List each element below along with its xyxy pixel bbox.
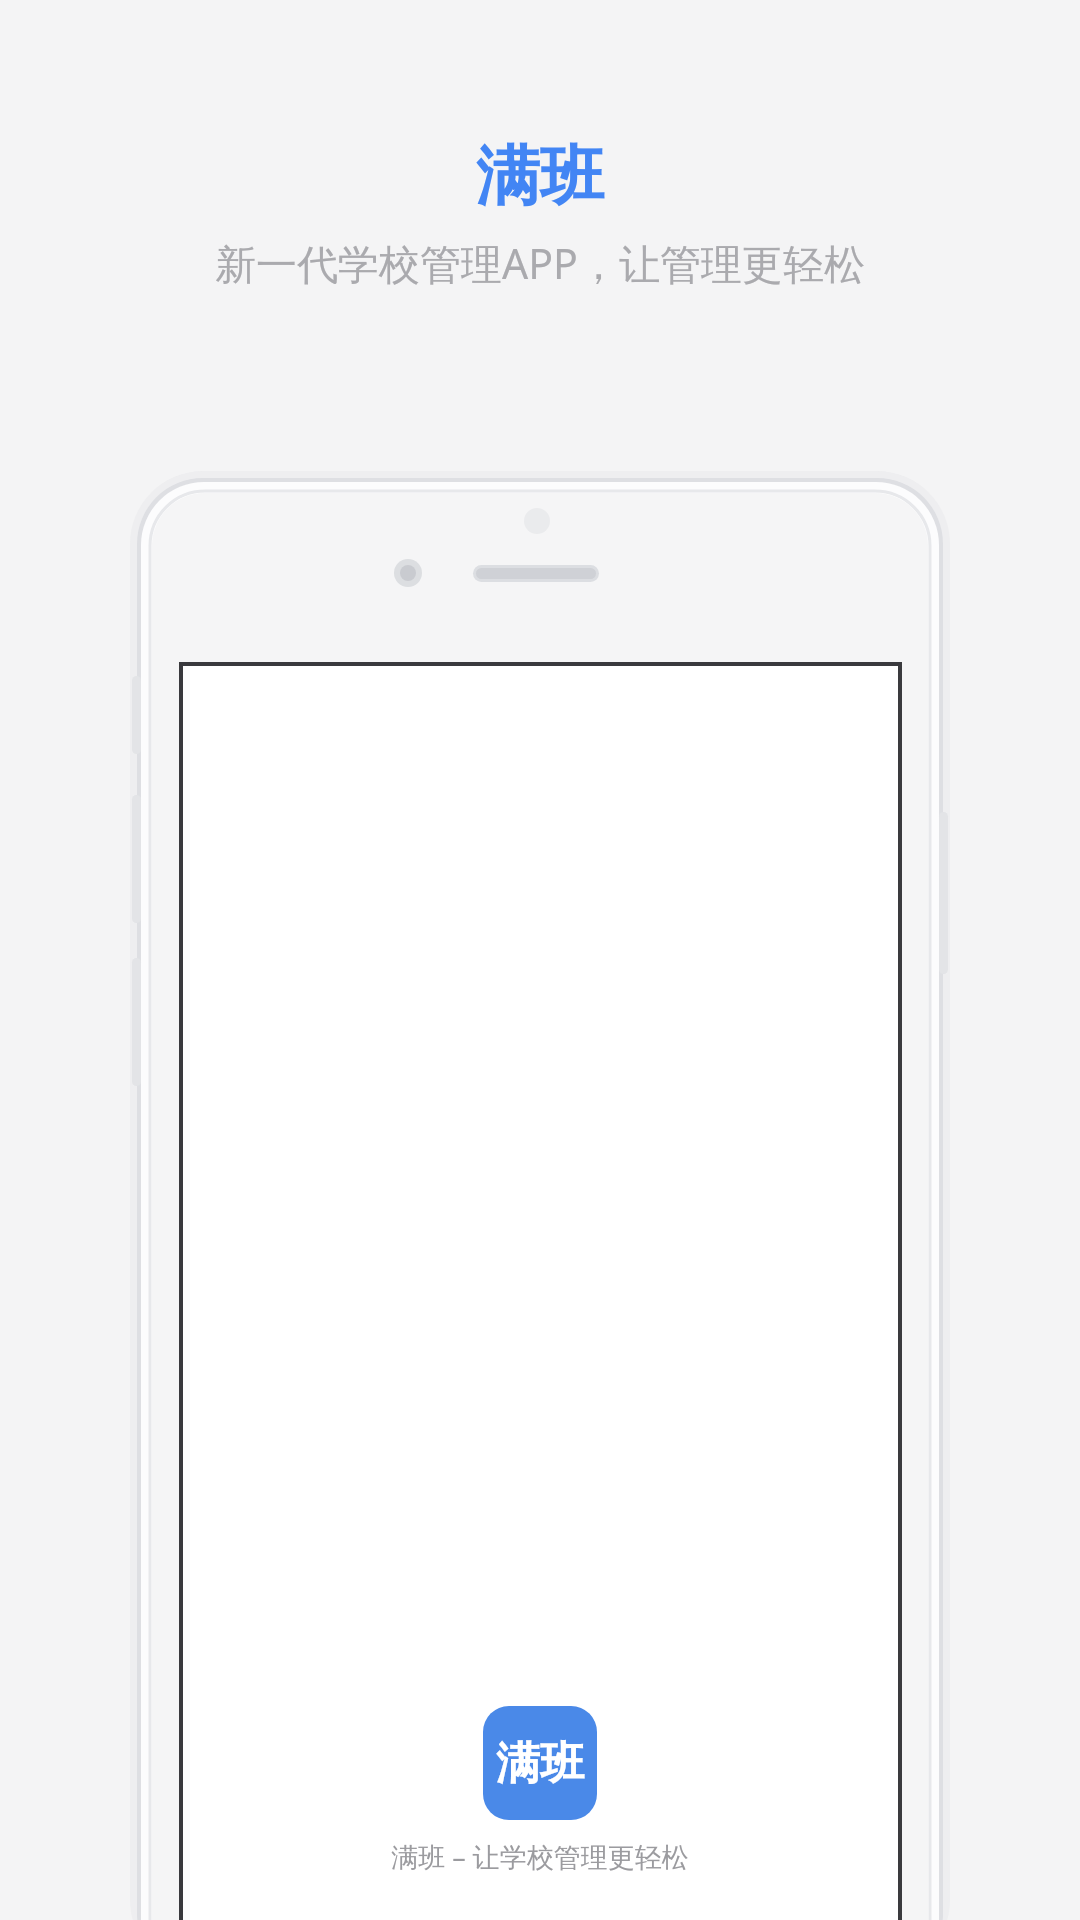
- staticText: 满班: [496, 1736, 584, 1791]
- staticText: 满班 – 让学校管理更轻松: [391, 1838, 689, 1875]
- button[interactable]: 满班 app icon: [483, 1706, 597, 1820]
- button[interactable]: 满班: [476, 136, 604, 217]
- staticText: 新一代学校管理APP，让管理更轻松: [215, 235, 865, 291]
